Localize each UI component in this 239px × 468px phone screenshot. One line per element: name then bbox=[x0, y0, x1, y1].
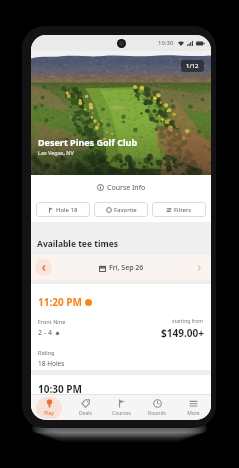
staticText: $149.00+ bbox=[161, 326, 204, 340]
staticText: Favorite bbox=[114, 206, 137, 214]
button[interactable]: More bbox=[175, 395, 211, 420]
button[interactable]: Next day bbox=[190, 259, 207, 276]
staticText: 10:30 PM bbox=[38, 382, 82, 395]
staticText: 18 Holes bbox=[38, 359, 65, 368]
staticText: Available tee times bbox=[37, 238, 119, 250]
staticText: 2 - 4 bbox=[38, 328, 52, 338]
staticText: Front Nine bbox=[38, 318, 66, 325]
staticText: 11:20 PM bbox=[38, 295, 82, 309]
button[interactable]: Favorite bbox=[94, 202, 148, 217]
button[interactable]: Play bbox=[31, 395, 67, 420]
button[interactable]: 11:20 PM bbox=[31, 284, 211, 370]
staticText: Desert Pines Golf Club bbox=[38, 136, 138, 148]
staticText: starting from bbox=[172, 318, 204, 325]
staticText: 1/12 bbox=[186, 62, 199, 70]
button[interactable]: Photos bbox=[181, 60, 204, 72]
staticText: Las Vegas, NV bbox=[38, 149, 74, 156]
button[interactable]: Rounds bbox=[139, 395, 175, 420]
staticText: Rounds bbox=[148, 410, 166, 417]
staticText: Riding bbox=[38, 349, 55, 356]
staticText: Play bbox=[44, 410, 54, 417]
button[interactable]: Deals bbox=[67, 395, 103, 420]
button[interactable]: Hole 18 bbox=[36, 202, 90, 217]
button[interactable]: Filters bbox=[152, 202, 206, 217]
staticText: Courses bbox=[112, 410, 131, 417]
button[interactable]: 10:30 PM bbox=[31, 375, 211, 395]
staticText: Deals bbox=[79, 410, 92, 417]
staticText: Fri, Sep 26 bbox=[109, 263, 144, 273]
staticText: Hole 18 bbox=[56, 206, 78, 214]
staticText: More bbox=[187, 410, 200, 417]
button[interactable]: Course Info bbox=[31, 175, 211, 200]
staticText: 10:30 bbox=[158, 39, 174, 47]
staticText: Filters bbox=[174, 206, 192, 214]
button[interactable]: Previous day bbox=[35, 259, 52, 276]
staticText: Course Info bbox=[107, 183, 146, 193]
button[interactable]: Fri, Sep 26 bbox=[56, 259, 186, 276]
button[interactable]: Courses bbox=[103, 395, 139, 420]
